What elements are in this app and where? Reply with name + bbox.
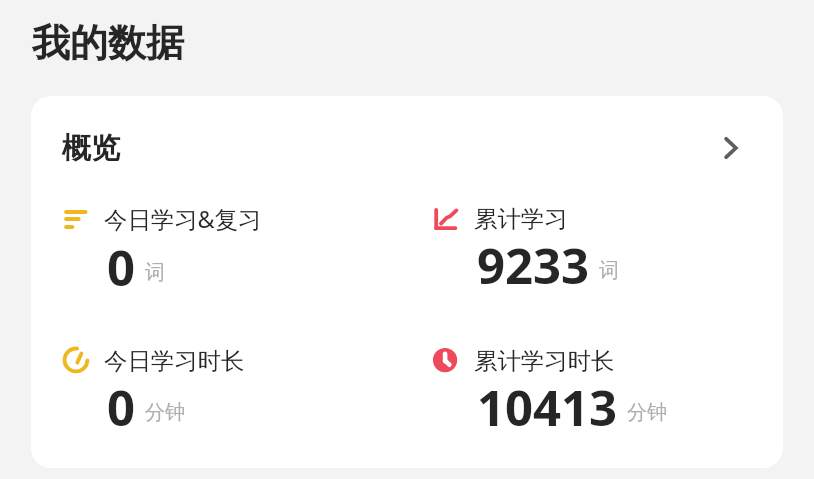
staticText: 今日学习时长 (104, 346, 245, 375)
staticText: 9233 (477, 232, 590, 299)
button[interactable]: 概览 (31, 96, 783, 200)
staticText: 词 (599, 258, 619, 283)
button[interactable]: 累计学习时长 (434, 345, 764, 442)
staticText: 分钟 (627, 400, 667, 425)
staticText: 10413 (477, 374, 618, 441)
button[interactable]: 今日学习时长 (64, 345, 394, 442)
staticText: 我的数据 (32, 19, 184, 67)
button[interactable]: 今日学习&复习 (64, 203, 394, 302)
staticText: 概览 (62, 130, 120, 167)
staticText: 今日学习&复习 (104, 203, 262, 235)
button[interactable]: 累计学习 (434, 203, 764, 300)
staticText: 累计学习 (474, 204, 568, 233)
staticText: 0 (107, 234, 136, 301)
staticText: 0 (107, 374, 136, 441)
staticText: 词 (145, 260, 165, 285)
other: Open overview details (720, 137, 742, 159)
staticText: 累计学习时长 (474, 346, 615, 375)
staticText: 分钟 (145, 400, 185, 425)
